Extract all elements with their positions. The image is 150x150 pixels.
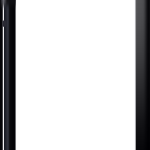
button[interactable]: Phone screen bbox=[0, 0, 150, 150]
